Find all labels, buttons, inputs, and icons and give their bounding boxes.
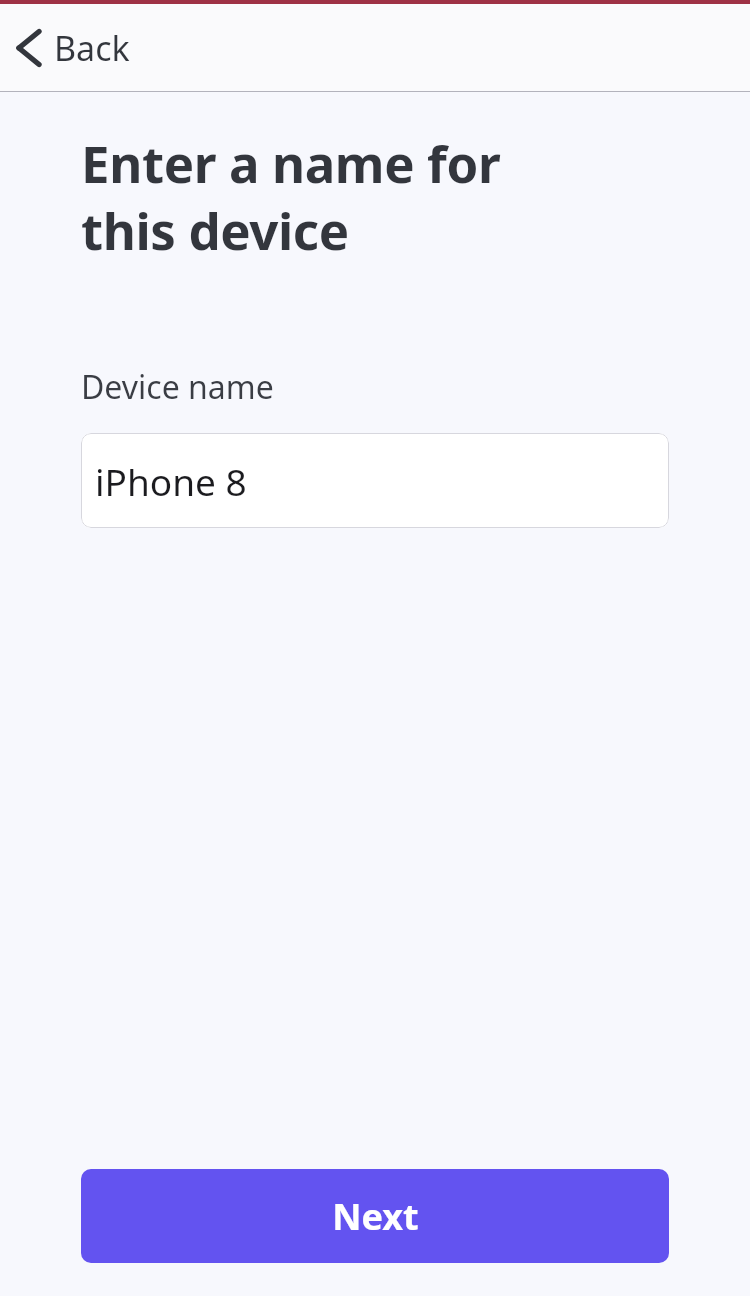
button[interactable]: Back	[0, 4, 750, 91]
staticText: Next	[332, 1192, 419, 1241]
staticText: iPhone 8	[95, 456, 247, 506]
button[interactable]: Next	[81, 1169, 669, 1263]
staticText: Back	[54, 25, 130, 71]
staticText: Device name	[81, 365, 274, 409]
staticText: Enter a name for this device	[81, 128, 501, 265]
button[interactable]: iPhone 8	[81, 433, 669, 528]
